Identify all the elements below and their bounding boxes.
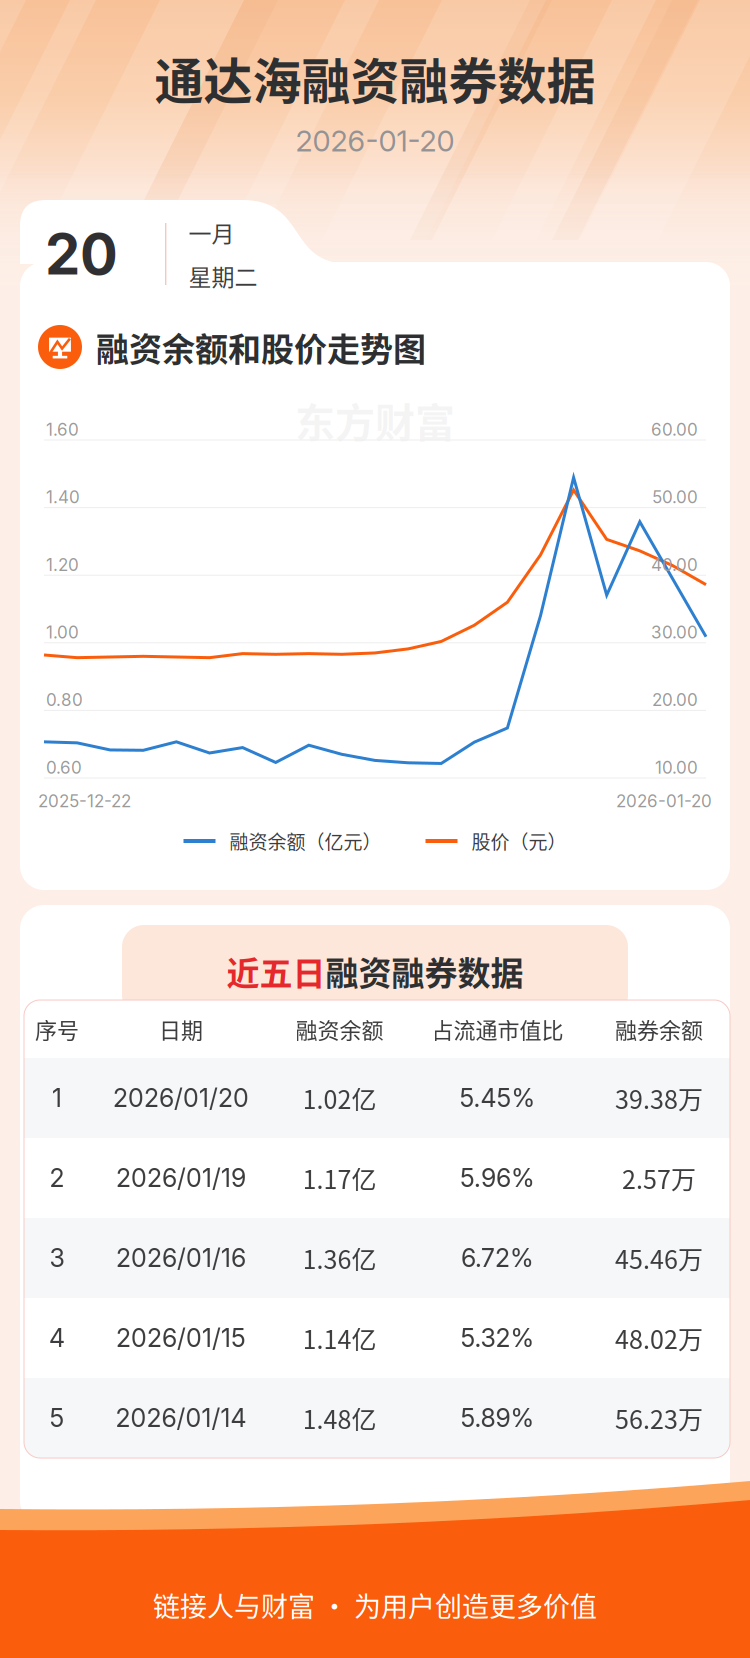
staticText: 1.48亿: [302, 1400, 376, 1436]
staticText: 1.20: [46, 554, 79, 575]
staticText: 融资余额（亿元）: [229, 827, 381, 855]
staticText: 融资余额和股价走势图: [96, 323, 426, 371]
staticText: 2026/01/16: [116, 1243, 246, 1273]
staticText: 1.36亿: [302, 1240, 376, 1276]
staticText: 39.38万: [615, 1080, 703, 1116]
staticText: 1.02亿: [302, 1080, 376, 1116]
staticText: 6.72%: [461, 1243, 534, 1273]
staticText: 1.60: [46, 419, 79, 440]
staticText: 20.00: [652, 690, 698, 710]
staticText: 50.00: [652, 487, 698, 507]
staticText: 近五日: [226, 947, 325, 995]
staticText: 60.00: [651, 419, 698, 440]
staticText: 股价（元）: [471, 827, 566, 855]
staticText: 1.40: [46, 487, 80, 507]
staticText: 2026-01-20: [295, 123, 454, 159]
staticText: 融券余额: [615, 1013, 703, 1045]
staticText: 一月: [188, 216, 234, 249]
staticText: 星期二: [188, 259, 257, 292]
staticText: 日期: [159, 1013, 203, 1045]
staticText: 融资融券数据: [325, 947, 523, 995]
staticText: 5.89%: [460, 1403, 534, 1433]
staticText: 5.96%: [460, 1163, 535, 1193]
staticText: 3: [49, 1243, 64, 1273]
staticText: 2025-12-22: [38, 791, 131, 811]
staticText: 1.14亿: [302, 1320, 376, 1356]
staticText: 2026/01/20: [113, 1083, 249, 1113]
staticText: 45.46万: [615, 1240, 703, 1276]
staticText: 占流通市值比: [431, 1013, 563, 1045]
staticText: 1.00: [46, 622, 79, 643]
staticText: 48.02万: [615, 1320, 703, 1356]
staticText: 1: [52, 1083, 62, 1113]
staticText: 融资余额: [295, 1013, 383, 1045]
staticText: 2026/01/14: [115, 1403, 246, 1433]
staticText: 5.32%: [460, 1323, 534, 1353]
staticText: 2026-01-20: [616, 791, 712, 811]
staticText: 通达海融资融券数据: [154, 42, 595, 113]
staticText: 30.00: [651, 622, 698, 643]
staticText: 40.00: [651, 554, 698, 575]
staticText: 0.60: [46, 757, 82, 778]
staticText: 2026/01/15: [116, 1323, 246, 1353]
staticText: 0.80: [46, 690, 83, 710]
staticText: 4: [49, 1323, 65, 1353]
staticText: 1.17亿: [302, 1160, 376, 1196]
staticText: 20: [45, 220, 118, 288]
staticText: 56.23万: [615, 1400, 703, 1436]
staticText: 5.45%: [459, 1083, 535, 1113]
staticText: 5: [49, 1403, 64, 1433]
staticText: 2.57万: [622, 1160, 696, 1196]
staticText: 2: [49, 1163, 64, 1193]
staticText: 2026/01/19: [116, 1163, 246, 1193]
staticText: 序号: [35, 1013, 79, 1045]
staticText: 链接人与财富 · 为用户创造更多价值: [153, 1585, 597, 1624]
staticText: 10.00: [655, 757, 698, 778]
staticText: 东方财富: [295, 391, 455, 449]
